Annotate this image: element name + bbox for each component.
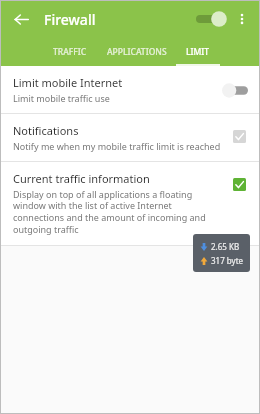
staticText: Notifications xyxy=(13,123,79,138)
button[interactable]: Notifications xyxy=(228,125,250,147)
staticText: Limit mobile traffic use xyxy=(13,92,110,104)
staticText: LIMIT xyxy=(186,46,210,58)
button[interactable]: LIMIT xyxy=(176,38,220,66)
staticText: Display on top of all applications a flo… xyxy=(13,188,222,236)
staticText: TRAFFIC xyxy=(53,46,87,58)
button[interactable]: Traffic overlay window xyxy=(193,234,250,272)
staticText: Firewall xyxy=(44,10,96,29)
staticText: Limit mobile Internet xyxy=(13,75,123,90)
button[interactable]: Back xyxy=(8,6,34,32)
button[interactable]: Enable firewall xyxy=(192,6,230,32)
staticText: 317 byte xyxy=(211,255,244,266)
button[interactable]: Current traffic information xyxy=(228,173,250,195)
button[interactable]: Current traffic information xyxy=(0,162,260,245)
button[interactable]: TRAFFIC xyxy=(42,38,98,66)
staticText: Current traffic information xyxy=(13,171,150,186)
staticText: APPLICATIONS xyxy=(107,46,167,58)
button[interactable]: More options xyxy=(230,7,254,31)
button[interactable]: Notifications xyxy=(0,114,260,161)
button[interactable]: APPLICATIONS xyxy=(98,38,176,66)
staticText: 2.65 KB xyxy=(211,241,240,252)
staticText: Notify me when my mobile traffic limit i… xyxy=(13,140,221,152)
button[interactable]: Limit mobile Internet xyxy=(0,66,260,113)
